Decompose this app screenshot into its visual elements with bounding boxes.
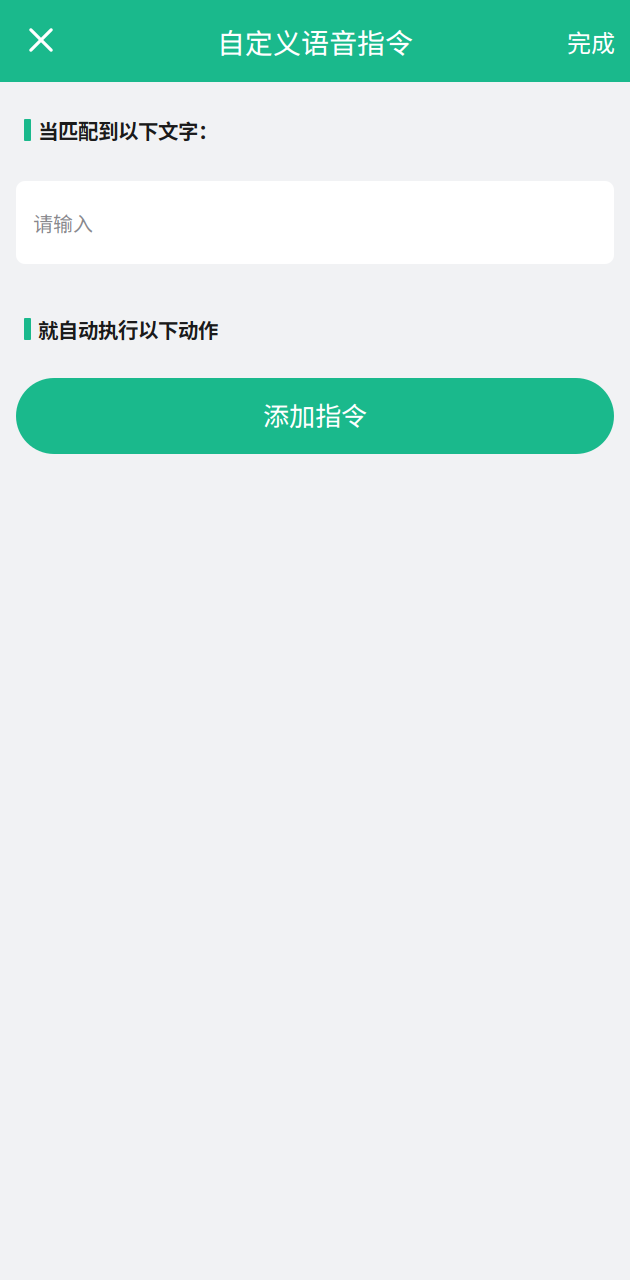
staticText: 添加指令 [263,396,367,433]
staticText: 完成 [567,24,615,59]
staticText: 当匹配到以下文字： [38,115,218,145]
staticText: 就自动执行以下动作 [38,314,218,344]
staticText: 自定义语音指令 [217,21,413,62]
button[interactable]: 完成 [551,0,615,82]
button[interactable]: 添加指令 [16,378,614,454]
staticText: 请输入 [33,208,93,237]
button[interactable]: Close [16,0,66,82]
